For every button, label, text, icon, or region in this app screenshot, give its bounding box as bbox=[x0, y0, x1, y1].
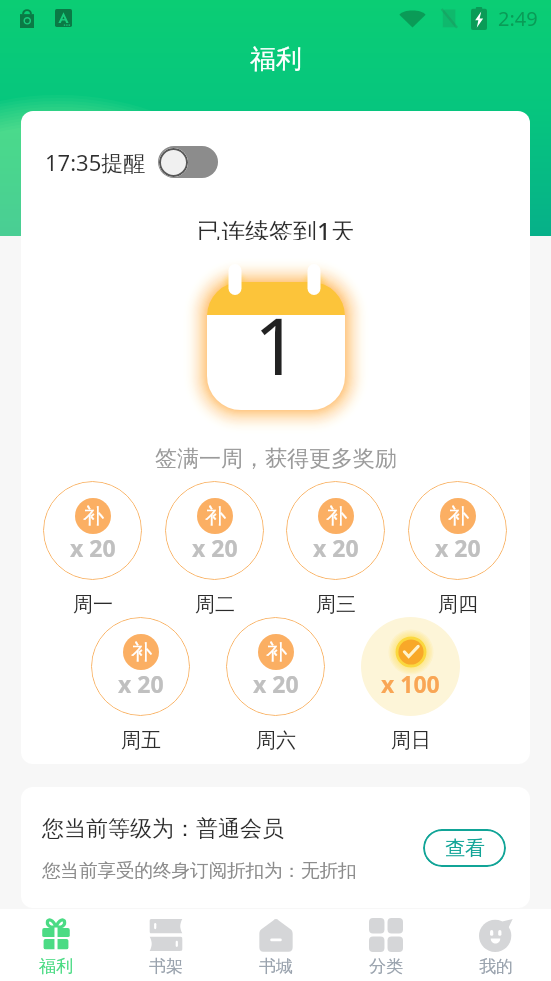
staticText: 补 bbox=[205, 503, 226, 529]
staticText: 周一 bbox=[73, 592, 113, 617]
button[interactable]: 书城 bbox=[221, 909, 331, 981]
staticText: x 20 bbox=[253, 668, 299, 699]
button[interactable]: 补 bbox=[286, 481, 385, 580]
staticText: x 100 bbox=[381, 668, 440, 699]
staticText: 我的 bbox=[479, 956, 513, 977]
staticText: 周二 bbox=[195, 592, 235, 617]
staticText: 17:35提醒 bbox=[45, 147, 146, 177]
staticText: 补 bbox=[266, 639, 287, 665]
staticText: 您当前享受的终身订阅折扣为：无折扣 bbox=[42, 859, 357, 882]
button[interactable]: 补 bbox=[43, 481, 142, 580]
staticText: 书架 bbox=[149, 956, 183, 977]
button[interactable]: 分类 bbox=[331, 909, 441, 981]
button[interactable]: 补 bbox=[408, 481, 507, 580]
staticText: 补 bbox=[326, 503, 347, 529]
other: App notification bbox=[55, 9, 72, 27]
staticText: 书城 bbox=[259, 956, 293, 977]
staticText: 1 bbox=[254, 292, 299, 398]
staticText: 周三 bbox=[316, 592, 356, 617]
other: Shopping bag notification bbox=[20, 9, 34, 28]
staticText: 补 bbox=[83, 503, 104, 529]
button[interactable]: 补 bbox=[226, 617, 325, 716]
button[interactable]: 查看 bbox=[423, 829, 506, 867]
button[interactable]: 书架 bbox=[111, 909, 221, 981]
staticText: 周四 bbox=[438, 592, 478, 617]
staticText: x 20 bbox=[313, 532, 359, 563]
staticText: 福利 bbox=[250, 43, 302, 76]
staticText: x 20 bbox=[192, 532, 238, 563]
staticText: 补 bbox=[448, 503, 469, 529]
staticText: 周五 bbox=[121, 728, 161, 753]
button[interactable]: x 100 bbox=[361, 617, 460, 716]
staticText: 签满一周，获得更多奖励 bbox=[155, 445, 397, 469]
staticText: 周六 bbox=[256, 728, 296, 753]
staticText: 分类 bbox=[369, 956, 403, 977]
button[interactable]: 我的 bbox=[441, 909, 551, 981]
button[interactable]: Reminder toggle bbox=[158, 146, 218, 178]
button[interactable]: 补 bbox=[165, 481, 264, 580]
staticText: 已连续签到1天 bbox=[197, 214, 355, 240]
staticText: x 20 bbox=[435, 532, 481, 563]
staticText: 2:49 bbox=[498, 5, 538, 32]
staticText: 周日 bbox=[391, 728, 431, 753]
staticText: 补 bbox=[131, 639, 152, 665]
button[interactable]: 补 bbox=[91, 617, 190, 716]
staticText: 福利 bbox=[39, 956, 73, 977]
staticText: x 20 bbox=[118, 668, 164, 699]
staticText: 查看 bbox=[445, 836, 485, 861]
staticText: 您当前等级为：普通会员 bbox=[42, 815, 284, 843]
staticText: x 20 bbox=[70, 532, 116, 563]
button[interactable]: 福利 bbox=[0, 909, 111, 981]
